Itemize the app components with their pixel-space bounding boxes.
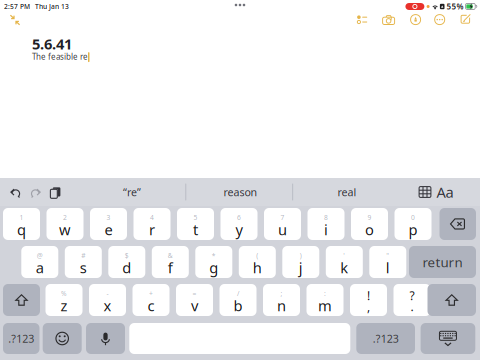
button[interactable]: -: [89, 284, 126, 316]
staticText: k: [340, 258, 348, 277]
staticText: 5.6.41: [32, 34, 72, 53]
button[interactable]: Dictation: [86, 323, 125, 354]
button[interactable]: Collapse: [7, 13, 23, 27]
staticText: (: [256, 251, 258, 260]
staticText: 5: [193, 213, 197, 222]
button[interactable]: Paste: [43, 181, 67, 205]
staticText: 3: [106, 213, 110, 222]
button[interactable]: &: [152, 246, 189, 278]
button[interactable]: New note: [458, 12, 473, 27]
button[interactable]: 8: [307, 208, 344, 240]
staticText: b: [233, 296, 242, 315]
staticText: ": [386, 251, 389, 260]
button[interactable]: real: [295, 179, 399, 204]
button[interactable]: Return: [409, 246, 476, 278]
button[interactable]: Markup: [408, 12, 423, 27]
button[interactable]: 0: [394, 208, 431, 240]
staticText: ): [300, 251, 302, 260]
staticText: -: [106, 289, 108, 298]
staticText: real: [337, 185, 356, 199]
button[interactable]: 2: [46, 208, 83, 240]
button[interactable]: Redo: [23, 181, 47, 205]
button[interactable]: 3: [90, 208, 127, 240]
button[interactable]: $: [108, 246, 145, 278]
button[interactable]: Delete: [439, 208, 476, 240]
button[interactable]: ;: [263, 284, 300, 316]
button[interactable]: 5: [177, 208, 214, 240]
staticText: &: [168, 251, 173, 260]
staticText: ;: [280, 289, 282, 298]
button[interactable]: reason: [188, 179, 292, 204]
button[interactable]: :: [306, 284, 343, 316]
button[interactable]: *: [195, 246, 232, 278]
button[interactable]: Numbers and symbols: [3, 323, 39, 354]
button[interactable]: +: [132, 284, 169, 316]
button[interactable]: 1: [3, 208, 40, 240]
staticText: 55%: [446, 1, 463, 12]
button[interactable]: !: [350, 284, 387, 316]
staticText: *: [212, 251, 216, 260]
button[interactable]: 9: [351, 208, 388, 240]
button[interactable]: Checklist: [354, 12, 370, 27]
button[interactable]: 4: [133, 208, 170, 240]
staticText: 6: [237, 213, 241, 222]
button[interactable]: 6: [220, 208, 257, 240]
button[interactable]: (: [239, 246, 276, 278]
staticText: =: [192, 289, 196, 298]
staticText: !: [367, 287, 370, 303]
button[interactable]: 7: [264, 208, 301, 240]
staticText: reason: [223, 185, 257, 199]
staticText: f: [168, 258, 173, 277]
button[interactable]: Camera: [380, 12, 397, 27]
staticText: 2: [63, 213, 67, 222]
button[interactable]: More: [432, 12, 447, 27]
button[interactable]: Numbers and symbols: [356, 323, 415, 354]
staticText: w: [59, 220, 71, 239]
staticText: r: [149, 220, 155, 239]
staticText: v: [191, 296, 198, 315]
button[interactable]: Emoji: [43, 323, 82, 354]
staticText: .?123: [373, 331, 399, 346]
button[interactable]: ): [282, 246, 319, 278]
button[interactable]: Undo: [4, 181, 28, 205]
staticText: Aa: [436, 182, 453, 202]
button[interactable]: ': [326, 246, 363, 278]
button[interactable]: @: [21, 246, 58, 278]
button[interactable]: “re”: [82, 179, 182, 204]
button[interactable]: #: [65, 246, 102, 278]
staticText: ,: [367, 298, 370, 314]
staticText: x: [103, 296, 111, 315]
staticText: :: [324, 289, 326, 298]
button[interactable]: =: [176, 284, 213, 316]
staticText: 7: [280, 213, 284, 222]
staticText: .: [410, 298, 413, 314]
staticText: @: [37, 251, 43, 260]
staticText: d: [122, 258, 131, 277]
staticText: 1: [19, 213, 23, 222]
button[interactable]: %: [45, 284, 82, 316]
staticText: 0: [411, 213, 415, 222]
staticText: 4: [150, 213, 154, 222]
staticText: m: [318, 296, 332, 315]
staticText: a: [36, 258, 44, 277]
button[interactable]: Insert table: [413, 180, 437, 204]
button[interactable]: Text formatting: [433, 180, 457, 204]
staticText: q: [17, 220, 26, 239]
staticText: j: [299, 258, 303, 277]
staticText: n: [277, 296, 286, 315]
staticText: “re”: [123, 185, 141, 199]
button[interactable]: ?: [393, 284, 430, 316]
staticText: 2:57 PM: [4, 2, 30, 11]
button[interactable]: Shift: [427, 284, 476, 316]
button[interactable]: Hide keyboard: [421, 323, 475, 354]
staticText: Thu Jan 13: [35, 2, 69, 11]
button[interactable]: /: [219, 284, 256, 316]
staticText: t: [193, 220, 198, 239]
button[interactable]: ": [369, 246, 406, 278]
staticText: %: [61, 289, 67, 298]
button[interactable]: Shift: [3, 284, 40, 316]
staticText: 8: [324, 213, 328, 222]
staticText: .?123: [8, 331, 34, 346]
staticText: ?: [409, 287, 414, 303]
